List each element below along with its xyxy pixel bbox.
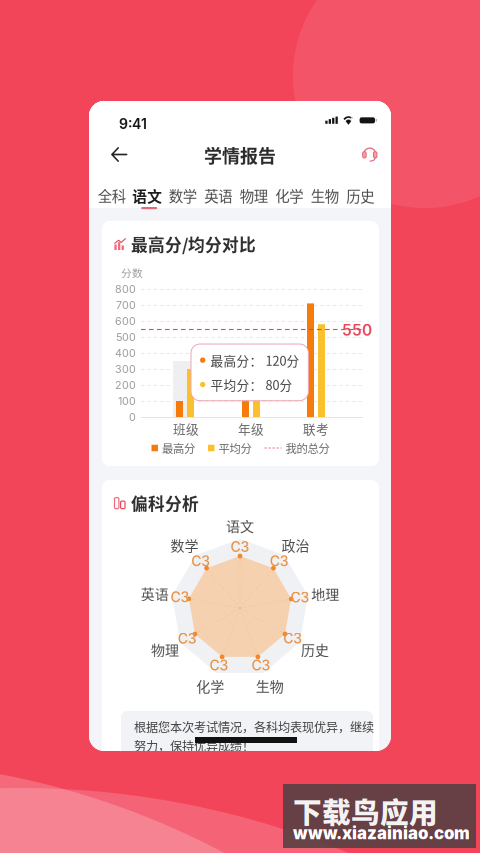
staticText: 英语 bbox=[204, 185, 232, 206]
staticText: 物理 bbox=[151, 639, 179, 659]
staticText: C3 bbox=[230, 538, 249, 555]
staticText: C3 bbox=[283, 630, 302, 647]
staticText: 数学 bbox=[170, 535, 198, 555]
button[interactable]: 语文 bbox=[130, 175, 164, 208]
staticText: 下载鸟应用 bbox=[293, 790, 438, 831]
staticText: 历史 bbox=[301, 639, 329, 659]
staticText: 800 bbox=[115, 282, 136, 295]
staticText: 语文 bbox=[226, 515, 254, 536]
staticText: C3 bbox=[209, 657, 228, 674]
staticText: 平均分 bbox=[218, 440, 251, 456]
staticText: 9:41 bbox=[119, 115, 147, 132]
staticText: 400 bbox=[115, 346, 136, 359]
staticText: 努力，保持优异成绩！ bbox=[134, 737, 254, 755]
staticText: 语文 bbox=[132, 185, 162, 206]
staticText: 英语 bbox=[141, 583, 169, 603]
staticText: 生物 bbox=[311, 185, 339, 206]
button[interactable]: 英语 bbox=[201, 175, 235, 208]
staticText: 300 bbox=[115, 362, 136, 375]
staticText: 最高分/均分对比 bbox=[131, 232, 256, 256]
staticText: 0 bbox=[129, 410, 136, 423]
staticText: 学情报告 bbox=[204, 142, 276, 168]
staticText: 最高分 bbox=[162, 440, 195, 456]
staticText: 根据您本次考试情况，各科均表现优异，继续 bbox=[134, 718, 374, 736]
staticText: 地理 bbox=[311, 583, 339, 604]
staticText: C3 bbox=[291, 589, 310, 606]
staticText: 化学 bbox=[196, 675, 224, 696]
staticText: C3 bbox=[191, 553, 210, 570]
button[interactable]: 客服 bbox=[357, 135, 387, 175]
staticText: 分数 bbox=[121, 265, 143, 280]
staticText: C3 bbox=[178, 630, 197, 647]
staticText: 数学 bbox=[169, 185, 197, 206]
staticText: 全科 bbox=[98, 185, 126, 206]
staticText: 100 bbox=[118, 394, 136, 407]
staticText: 600 bbox=[115, 314, 136, 327]
button[interactable]: 数学 bbox=[166, 175, 200, 208]
staticText: 平均分： 80分 bbox=[210, 375, 292, 394]
staticText: 200 bbox=[115, 378, 136, 391]
staticText: C3 bbox=[170, 589, 189, 606]
button[interactable]: 返回 bbox=[106, 135, 140, 175]
staticText: www.xiazainiao.com bbox=[293, 823, 470, 843]
button[interactable]: 物理 bbox=[237, 175, 271, 208]
staticText: 最高分： 120分 bbox=[210, 351, 299, 369]
staticText: 偏科分析 bbox=[131, 491, 199, 515]
staticText: 我的总分 bbox=[285, 440, 329, 456]
staticText: 物理 bbox=[240, 185, 268, 206]
button[interactable]: 生物 bbox=[308, 175, 342, 208]
staticText: 500 bbox=[116, 330, 136, 343]
staticText: 班级 bbox=[173, 419, 199, 438]
staticText: 化学 bbox=[275, 185, 303, 206]
staticText: 生物 bbox=[256, 675, 284, 696]
staticText: 700 bbox=[116, 298, 136, 311]
staticText: 历史 bbox=[346, 185, 374, 206]
staticText: C3 bbox=[251, 657, 270, 674]
button[interactable]: 化学 bbox=[272, 175, 306, 208]
staticText: 年级 bbox=[238, 419, 264, 438]
staticText: C3 bbox=[270, 553, 289, 570]
button[interactable]: 历史 bbox=[343, 175, 377, 208]
staticText: 政治 bbox=[282, 535, 310, 555]
staticText: 550 bbox=[342, 321, 372, 340]
button[interactable]: 全科 bbox=[95, 175, 129, 208]
staticText: 联考 bbox=[303, 419, 329, 438]
